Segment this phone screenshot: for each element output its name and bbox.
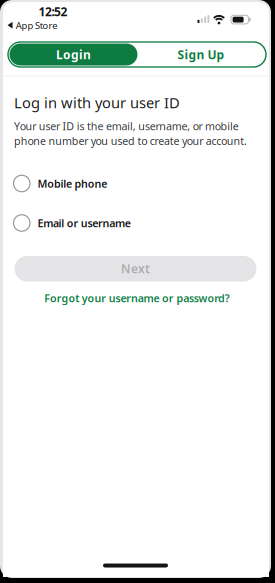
button[interactable]: Login (9, 43, 137, 65)
staticText: Next (121, 261, 150, 277)
button[interactable]: Email or username (13, 215, 265, 231)
button[interactable]: Sign Up (139, 43, 263, 65)
staticText: App Store (16, 19, 57, 31)
staticText: Mobile phone (37, 176, 107, 191)
button[interactable]: Forgot your username or password? (44, 291, 230, 305)
staticText: Sign Up (177, 46, 224, 62)
staticText: Forgot your username or password? (44, 291, 230, 305)
staticText: Your user ID is the email, username, or … (14, 119, 247, 148)
staticText: Log in with your user ID (14, 93, 180, 112)
staticText: 12:52 (38, 3, 67, 19)
staticText: Login (56, 46, 91, 62)
button[interactable]: Next (14, 256, 256, 281)
button[interactable]: Mobile phone (13, 175, 265, 192)
staticText: Email or username (37, 216, 131, 230)
